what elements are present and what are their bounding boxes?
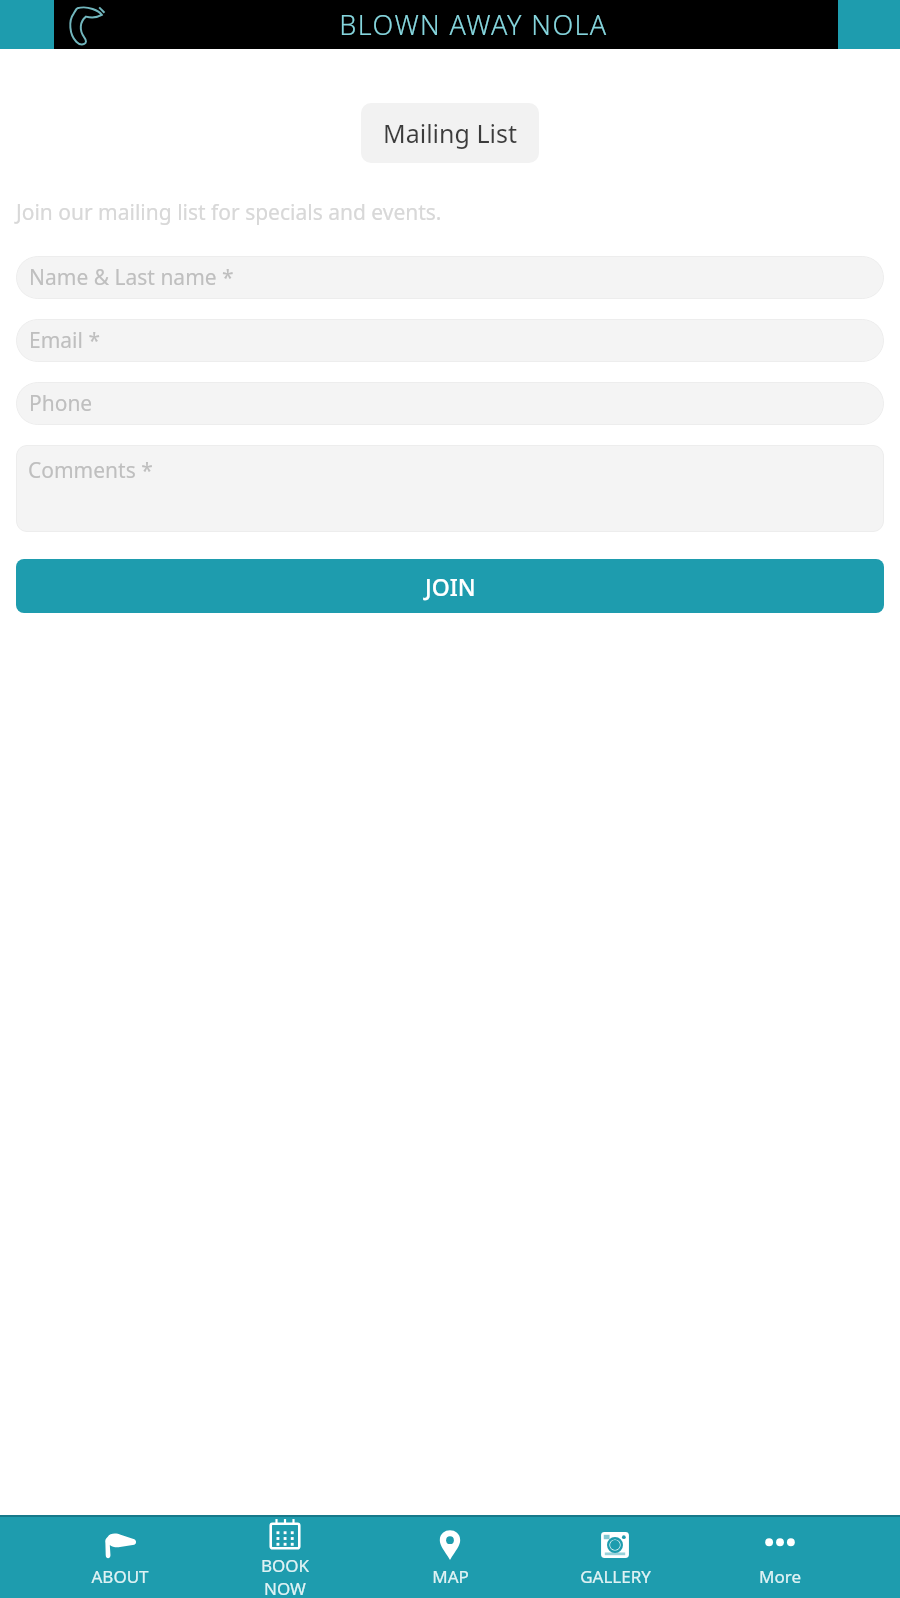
staticText: Email *: [29, 326, 100, 355]
button[interactable]: Comments *: [16, 445, 884, 532]
staticText: Phone: [29, 389, 93, 418]
button[interactable]: Name & Last name *: [16, 256, 884, 299]
staticText: BLOWN AWAY NOLA: [339, 6, 608, 43]
staticText: Comments *: [28, 456, 153, 485]
staticText: Join our mailing list for specials and e…: [16, 198, 442, 227]
button[interactable]: Phone: [16, 382, 884, 425]
button[interactable]: ABOUT: [75, 1528, 165, 1588]
button[interactable]: Email *: [16, 319, 884, 362]
staticText: More: [759, 1565, 801, 1588]
button[interactable]: More: [735, 1528, 825, 1588]
staticText: GALLERY: [580, 1565, 651, 1588]
staticText: MAP: [432, 1565, 469, 1588]
button[interactable]: JOIN: [16, 559, 884, 613]
staticText: Mailing List: [383, 116, 517, 150]
button[interactable]: BOOK NOW: [240, 1517, 330, 1598]
staticText: Name & Last name *: [29, 263, 234, 292]
button[interactable]: GALLERY: [570, 1528, 660, 1588]
staticText: JOIN: [425, 571, 476, 602]
button[interactable]: MAP: [405, 1528, 495, 1588]
staticText: BOOK NOW: [240, 1554, 330, 1598]
staticText: ABOUT: [91, 1565, 149, 1588]
button[interactable]: Mailing List: [361, 103, 539, 163]
